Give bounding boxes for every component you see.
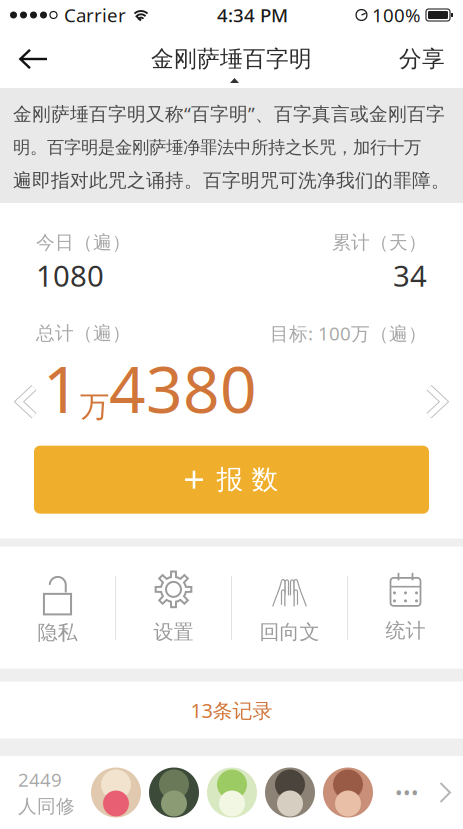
staticText: 隐私	[37, 620, 77, 645]
staticText: 13条记录	[190, 697, 272, 723]
staticText: 回向文	[259, 620, 319, 644]
staticText: 4:34 PM	[217, 3, 288, 27]
staticText: 设置	[153, 620, 193, 644]
button[interactable]: 隐私	[0, 547, 115, 669]
staticText: 2449	[18, 767, 62, 792]
staticText: 100%	[372, 3, 421, 27]
staticText: •••	[395, 779, 419, 806]
staticText: 统计	[385, 618, 425, 643]
staticText: 分享	[399, 45, 445, 73]
staticText: Carrier	[64, 3, 126, 27]
button[interactable]: 设置	[116, 547, 231, 669]
staticText: 34	[393, 256, 427, 295]
staticText: 总计（遍）	[36, 322, 131, 345]
button[interactable]: 返回	[0, 38, 68, 79]
staticText: 人同修	[18, 795, 75, 818]
button[interactable]: 13条记录	[0, 682, 463, 739]
staticText: 4380	[109, 346, 257, 431]
staticText: 报 数	[216, 463, 278, 496]
staticText: 万	[80, 389, 109, 425]
staticText: 今日（遍）	[36, 231, 131, 254]
button[interactable]: 统计	[348, 547, 463, 669]
staticText: 遍即指对此咒之诵持。百字明咒可洗净我们的罪障。	[13, 169, 450, 192]
button[interactable]: 报 数	[34, 446, 429, 514]
button[interactable]: 分享	[379, 33, 463, 85]
button[interactable]: 更多	[427, 767, 463, 817]
staticText: 明。百字明是金刚萨埵净罪法中所持之长咒，加行十万	[13, 137, 421, 158]
button[interactable]: 下一项	[420, 383, 463, 431]
staticText: 1080	[36, 256, 104, 295]
staticText: 累计（天）	[332, 231, 427, 254]
staticText: 1	[43, 346, 80, 431]
staticText: 金刚萨埵百字明又称“百字明”、百字真言或金刚百字	[13, 101, 445, 126]
button[interactable]: 回向文	[232, 547, 347, 669]
button[interactable]: 上一项	[0, 383, 43, 431]
staticText: 目标: 100万（遍）	[270, 321, 427, 346]
staticText: 金刚萨埵百字明	[151, 45, 312, 73]
